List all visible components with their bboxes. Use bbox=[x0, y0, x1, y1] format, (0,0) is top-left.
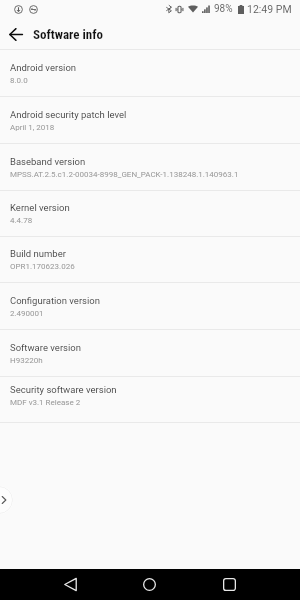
staticText: Security software version bbox=[10, 384, 117, 395]
staticText: 98% bbox=[214, 3, 233, 15]
staticText: 8.0.0 bbox=[10, 76, 28, 85]
staticText: Configuration version bbox=[10, 295, 100, 306]
staticText: Build number bbox=[10, 248, 66, 259]
staticText: Baseband version bbox=[10, 156, 86, 167]
staticText: MDF v3.1 Release 2 bbox=[10, 398, 81, 407]
staticText: April 1, 2018 bbox=[10, 123, 55, 132]
staticText: 12:49 PM bbox=[247, 3, 292, 15]
staticText: Software version bbox=[10, 342, 81, 353]
button[interactable]: Home bbox=[136, 571, 163, 598]
button[interactable]: Baseband version bbox=[0, 144, 300, 191]
button[interactable]: Android security patch level bbox=[0, 97, 300, 144]
button[interactable]: Build number bbox=[0, 237, 300, 283]
button[interactable]: Security software version bbox=[0, 377, 300, 423]
staticText: Kernel version bbox=[10, 202, 70, 213]
button[interactable]: Recent apps bbox=[216, 571, 243, 598]
button[interactable]: Kernel version bbox=[0, 191, 300, 237]
staticText: 4.4.78 bbox=[10, 216, 33, 225]
staticText: MPSS.AT.2.5.c1.2-00034-8998_GEN_PACK-1.1… bbox=[10, 170, 239, 179]
staticText: 2.490001 bbox=[10, 309, 44, 318]
staticText: Software info bbox=[33, 27, 103, 42]
staticText: OPR1.170623.026 bbox=[10, 262, 75, 271]
staticText: Android version bbox=[10, 62, 77, 73]
staticText: Android security patch level bbox=[10, 109, 127, 120]
staticText: H93220h bbox=[10, 356, 43, 365]
button[interactable]: Back bbox=[0, 19, 32, 49]
button[interactable]: Software version bbox=[0, 330, 300, 377]
button[interactable]: Open edge panel bbox=[0, 486, 13, 514]
button[interactable]: Back bbox=[57, 571, 84, 598]
button[interactable]: Android version bbox=[0, 50, 300, 97]
button[interactable]: Configuration version bbox=[0, 283, 300, 330]
